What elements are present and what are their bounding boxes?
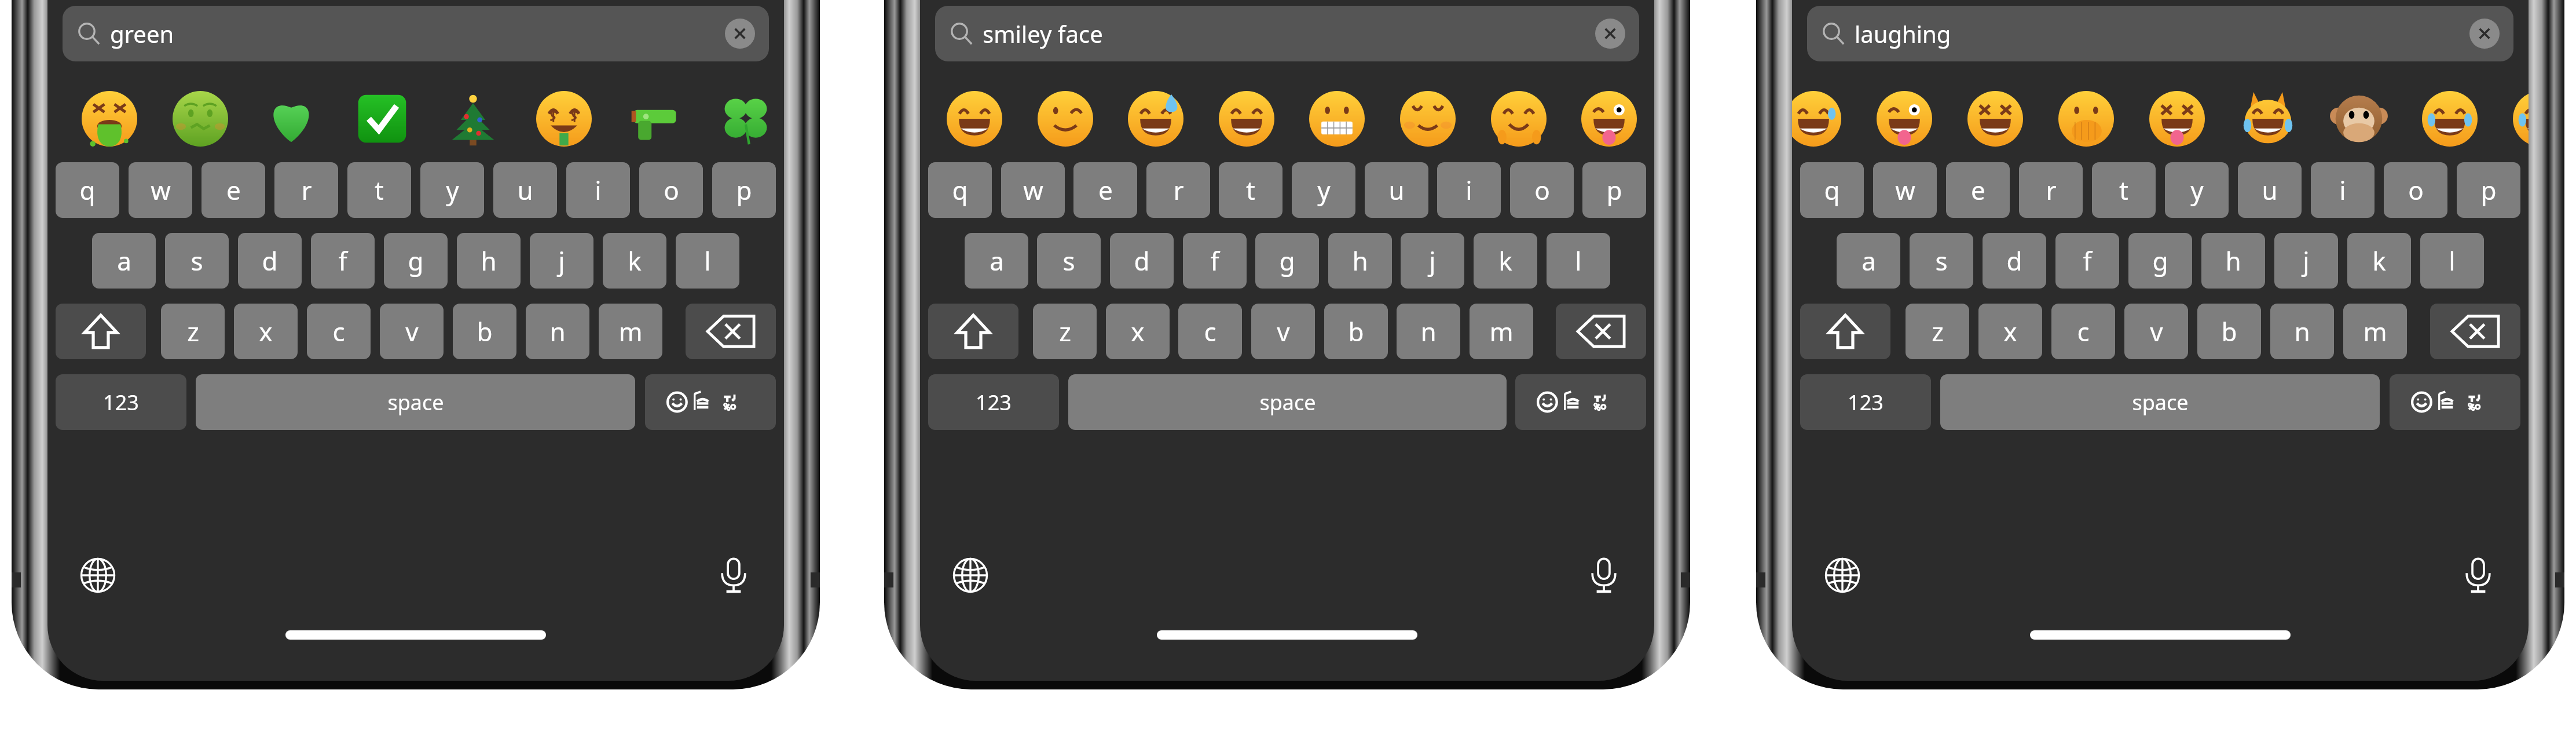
button[interactable]: z bbox=[161, 304, 225, 359]
button[interactable]: b bbox=[1324, 304, 1388, 359]
button[interactable]: Emoji bbox=[2331, 91, 2387, 147]
button[interactable]: v bbox=[2124, 304, 2188, 359]
button[interactable]: Emoji bbox=[536, 91, 592, 147]
button[interactable]: w bbox=[1001, 162, 1065, 218]
button[interactable]: g bbox=[384, 233, 448, 289]
button[interactable]: Clear search bbox=[2469, 19, 2500, 49]
button[interactable]: h bbox=[1328, 233, 1392, 289]
button[interactable]: g bbox=[1255, 233, 1319, 289]
button[interactable]: a bbox=[92, 233, 156, 289]
button[interactable]: smiley face bbox=[935, 6, 1639, 61]
button[interactable]: s bbox=[1037, 233, 1101, 289]
button[interactable]: j bbox=[2274, 233, 2338, 289]
button[interactable]: Emoji bbox=[263, 91, 319, 147]
button[interactable]: v bbox=[1251, 304, 1315, 359]
button[interactable]: q bbox=[1800, 162, 1864, 218]
button[interactable]: o bbox=[2384, 162, 2447, 218]
button[interactable]: Dictate bbox=[709, 550, 758, 600]
button[interactable]: c bbox=[2051, 304, 2115, 359]
button[interactable]: Emoji and symbols bbox=[1515, 374, 1646, 430]
button[interactable]: n bbox=[1397, 304, 1460, 359]
button[interactable]: Emoji bbox=[1877, 91, 1932, 147]
button[interactable]: f bbox=[1183, 233, 1247, 289]
button[interactable]: Emoji bbox=[1309, 91, 1365, 147]
button[interactable]: a bbox=[965, 233, 1028, 289]
button[interactable]: Shift bbox=[56, 304, 146, 359]
button[interactable]: x bbox=[234, 304, 298, 359]
button[interactable]: c bbox=[307, 304, 371, 359]
button[interactable]: p bbox=[1582, 162, 1646, 218]
button[interactable]: Delete bbox=[2430, 304, 2520, 359]
button[interactable]: Clear search bbox=[1595, 19, 1625, 49]
button[interactable]: Emoji bbox=[2149, 91, 2205, 147]
button[interactable]: Emoji bbox=[1967, 91, 2023, 147]
button[interactable]: Emoji bbox=[1219, 91, 1274, 147]
button[interactable]: j bbox=[1401, 233, 1464, 289]
button[interactable]: e bbox=[1073, 162, 1137, 218]
button[interactable]: j bbox=[530, 233, 593, 289]
button[interactable]: i bbox=[566, 162, 630, 218]
button[interactable]: green bbox=[63, 6, 769, 61]
button[interactable]: Delete bbox=[686, 304, 776, 359]
button[interactable]: c bbox=[1178, 304, 1242, 359]
button[interactable]: m bbox=[2343, 304, 2407, 359]
button[interactable]: k bbox=[1474, 233, 1537, 289]
button[interactable]: b bbox=[453, 304, 516, 359]
button[interactable]: y bbox=[2165, 162, 2229, 218]
button[interactable]: d bbox=[1110, 233, 1174, 289]
button[interactable]: Dictate bbox=[2453, 550, 2503, 600]
button[interactable]: 123 bbox=[1800, 374, 1931, 430]
button[interactable]: Clear search bbox=[725, 19, 755, 49]
button[interactable]: t bbox=[347, 162, 411, 218]
button[interactable]: Emoji bbox=[2058, 91, 2114, 147]
button[interactable]: h bbox=[457, 233, 521, 289]
button[interactable]: n bbox=[526, 304, 589, 359]
button[interactable]: u bbox=[493, 162, 557, 218]
button[interactable]: z bbox=[1033, 304, 1097, 359]
button[interactable]: Emoji bbox=[1491, 91, 1547, 147]
button[interactable]: r bbox=[1146, 162, 1210, 218]
button[interactable]: l bbox=[676, 233, 739, 289]
button[interactable]: n bbox=[2270, 304, 2334, 359]
button[interactable]: e bbox=[1946, 162, 2010, 218]
button[interactable]: Emoji bbox=[1400, 91, 1456, 147]
button[interactable]: t bbox=[2092, 162, 2156, 218]
button[interactable]: m bbox=[599, 304, 662, 359]
button[interactable]: Emoji bbox=[627, 91, 683, 147]
button[interactable]: Change keyboard bbox=[1818, 550, 1867, 600]
button[interactable]: v bbox=[380, 304, 444, 359]
button[interactable]: Emoji bbox=[2513, 91, 2529, 147]
button[interactable]: i bbox=[2311, 162, 2375, 218]
button[interactable]: Delete bbox=[1556, 304, 1646, 359]
button[interactable]: Dictate bbox=[1579, 550, 1629, 600]
button[interactable]: p bbox=[2457, 162, 2520, 218]
button[interactable]: laughing bbox=[1807, 6, 2513, 61]
button[interactable]: Emoji bbox=[1038, 91, 1093, 147]
button[interactable]: x bbox=[1106, 304, 1170, 359]
button[interactable]: Emoji bbox=[2422, 91, 2478, 147]
button[interactable]: 123 bbox=[928, 374, 1059, 430]
button[interactable]: r bbox=[2019, 162, 2083, 218]
button[interactable]: Change keyboard bbox=[73, 550, 123, 600]
button[interactable]: Shift bbox=[1800, 304, 1890, 359]
button[interactable]: Emoji and symbols bbox=[2390, 374, 2520, 430]
button[interactable]: t bbox=[1219, 162, 1282, 218]
button[interactable]: w bbox=[1873, 162, 1937, 218]
button[interactable]: space bbox=[1940, 374, 2380, 430]
button[interactable]: u bbox=[1365, 162, 1428, 218]
button[interactable]: Emoji bbox=[1128, 91, 1183, 147]
button[interactable]: d bbox=[238, 233, 302, 289]
button[interactable]: Emoji bbox=[718, 91, 774, 147]
button[interactable]: Emoji bbox=[947, 91, 1002, 147]
button[interactable]: f bbox=[2055, 233, 2119, 289]
button[interactable]: Emoji bbox=[2240, 91, 2296, 147]
button[interactable]: u bbox=[2238, 162, 2302, 218]
button[interactable]: Emoji bbox=[354, 91, 410, 147]
button[interactable]: i bbox=[1437, 162, 1501, 218]
button[interactable]: y bbox=[1292, 162, 1355, 218]
button[interactable]: p bbox=[712, 162, 776, 218]
button[interactable]: x bbox=[1978, 304, 2042, 359]
button[interactable]: f bbox=[311, 233, 375, 289]
button[interactable]: s bbox=[1910, 233, 1973, 289]
button[interactable]: q bbox=[56, 162, 119, 218]
